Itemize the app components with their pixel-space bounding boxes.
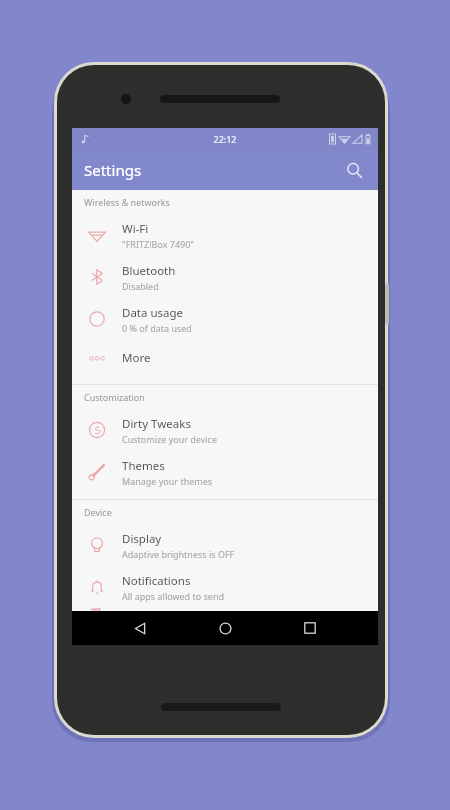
staticText: Display <box>122 531 162 547</box>
staticText: Wireless & networks <box>84 196 170 208</box>
staticText: Adaptive brightness is OFF <box>122 548 235 560</box>
button[interactable]: Themes <box>72 451 378 493</box>
staticText: All apps allowed to send <box>122 590 225 602</box>
staticText: Dirty Tweaks <box>122 416 191 432</box>
button[interactable]: Bluetooth <box>72 256 378 298</box>
button[interactable]: Wi-Fi <box>72 214 378 256</box>
button[interactable]: Sound <box>72 608 378 611</box>
button[interactable]: Notifications <box>72 566 378 608</box>
button[interactable]: Display <box>72 524 378 566</box>
staticText: Manage your themes <box>122 475 213 487</box>
button[interactable]: Recent apps <box>293 611 327 645</box>
staticText: 0 % of data used <box>122 322 192 334</box>
staticText: Settings <box>84 160 142 180</box>
staticText: More <box>122 350 151 366</box>
staticText: Disabled <box>122 280 159 292</box>
button[interactable]: Dirty Tweaks <box>72 409 378 451</box>
staticText: Data usage <box>122 305 184 321</box>
button[interactable]: More <box>72 340 378 376</box>
button[interactable]: Back <box>123 611 157 645</box>
staticText: 22:12 <box>213 133 237 145</box>
staticText: Themes <box>122 458 165 474</box>
staticText: Bluetooth <box>122 263 176 279</box>
staticText: Device <box>84 506 112 518</box>
staticText: Wi-Fi <box>122 221 149 237</box>
staticText: Customization <box>84 391 145 403</box>
staticText: Customize your device <box>122 433 218 445</box>
button[interactable]: Data usage <box>72 298 378 340</box>
button[interactable]: Home <box>208 611 242 645</box>
button[interactable]: Search <box>336 152 372 188</box>
staticText: Notifications <box>122 573 191 589</box>
staticText: "FRITZ!Box 7490" <box>122 238 195 250</box>
